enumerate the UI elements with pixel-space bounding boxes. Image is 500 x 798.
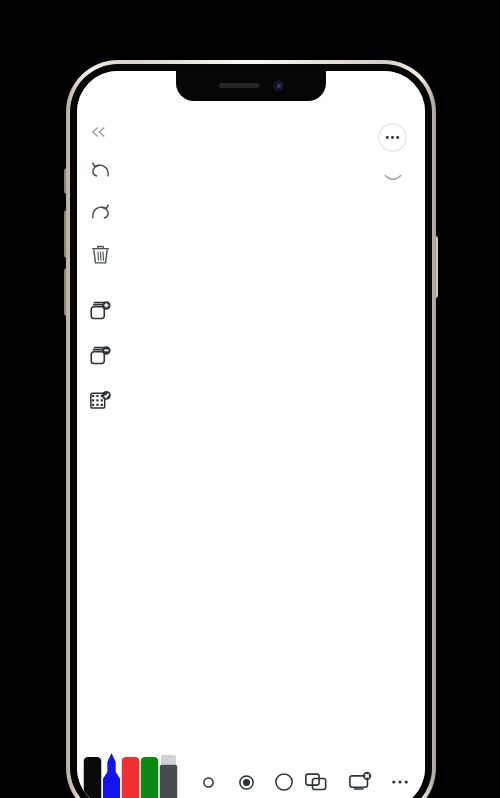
button[interactable]: Medium stroke	[233, 769, 259, 795]
button[interactable]: Black pen	[83, 753, 102, 798]
button[interactable]: More	[385, 767, 415, 797]
button[interactable]: Redo	[83, 195, 117, 229]
button[interactable]: Delete	[83, 237, 117, 271]
button[interactable]: Blue marker	[102, 753, 121, 798]
button[interactable]: Thick stroke	[271, 769, 297, 795]
button[interactable]: Add page	[83, 293, 117, 327]
button[interactable]: Red pen	[121, 753, 140, 798]
button[interactable]: Remove page	[83, 338, 117, 372]
button[interactable]: Thin stroke	[195, 769, 221, 795]
button[interactable]: Expand	[378, 163, 407, 192]
button[interactable]: Collapse toolbar	[86, 119, 112, 145]
button[interactable]: Select pages	[83, 383, 117, 417]
button[interactable]: More options	[378, 123, 407, 152]
button[interactable]: Undo	[83, 153, 117, 187]
button[interactable]: Close page	[343, 765, 377, 798]
button[interactable]: Green pen	[140, 753, 159, 798]
button[interactable]: Eraser	[159, 753, 178, 798]
button[interactable]: Layers	[299, 765, 333, 798]
